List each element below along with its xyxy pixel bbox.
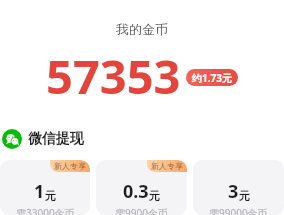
staticText: 微信提现 xyxy=(28,130,84,148)
staticText: 57353 xyxy=(46,44,181,108)
staticText: 元 xyxy=(45,189,56,203)
staticText: 需33000金币 xyxy=(16,206,75,215)
staticText: 需99000金币 xyxy=(209,206,268,215)
staticText: 元 xyxy=(239,189,250,203)
button[interactable]: 新人专享 xyxy=(96,160,187,215)
other: WeChat xyxy=(2,129,22,149)
staticText: 1 xyxy=(34,179,45,204)
staticText: 元 xyxy=(149,189,160,203)
staticText: 新人专享 xyxy=(54,161,86,171)
button[interactable]: 3 xyxy=(193,160,284,215)
staticText: 需9900金币 xyxy=(115,206,168,215)
button[interactable]: 约1.73元 xyxy=(186,69,238,86)
staticText: 0.3 xyxy=(123,179,149,204)
staticText: 新人专享 xyxy=(151,161,183,171)
staticText: 约1.73元 xyxy=(192,71,232,85)
staticText: 3 xyxy=(228,179,239,204)
button[interactable]: 新人专享 xyxy=(0,160,90,215)
staticText: 我的金币 xyxy=(116,21,168,37)
